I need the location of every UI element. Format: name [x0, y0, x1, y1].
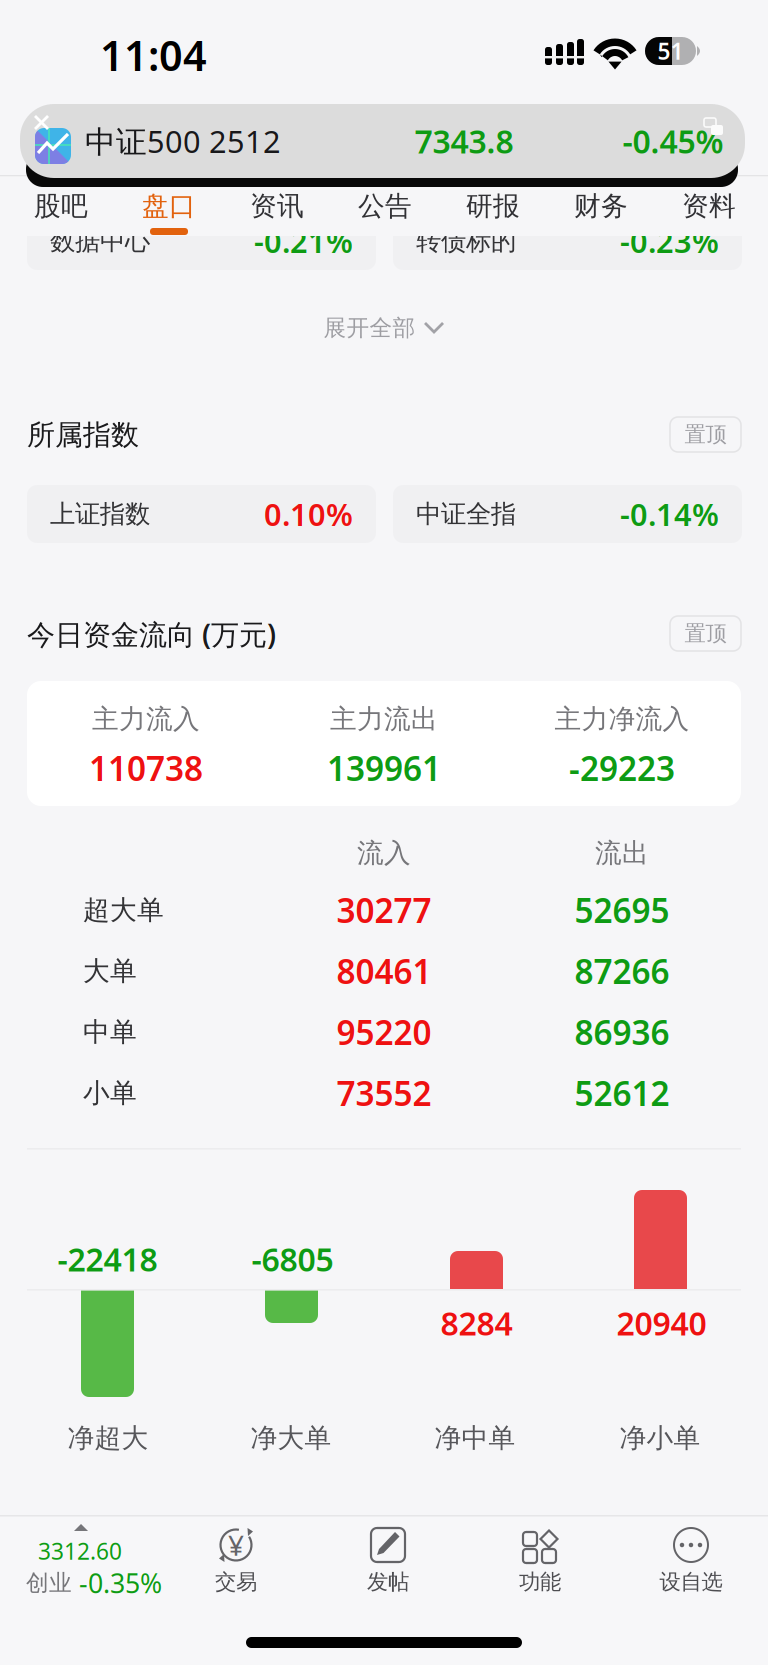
staticText: 交易 — [215, 1569, 257, 1595]
button[interactable]: 研报 — [439, 190, 547, 240]
staticText: 今日资金流向 (万元) — [27, 615, 276, 653]
staticText: -0.45% — [622, 120, 723, 162]
staticText: 86936 — [574, 1010, 669, 1054]
staticText: 主力流出 — [330, 703, 438, 735]
staticText: 设自选 — [659, 1569, 722, 1595]
staticText: 小单 — [83, 1077, 137, 1109]
staticText: 中单 — [83, 1016, 137, 1048]
button[interactable]: 3312.60 — [0, 1527, 180, 1611]
staticText: 73552 — [336, 1071, 431, 1115]
staticText: 净中单 — [434, 1422, 515, 1454]
staticText: 股吧 — [34, 190, 88, 222]
button[interactable]: ¥ — [161, 1526, 311, 1602]
staticText: 功能 — [519, 1569, 561, 1595]
button[interactable]: 资料 — [655, 190, 763, 240]
staticText: 净小单 — [619, 1422, 700, 1454]
staticText: 展开全部 — [323, 314, 415, 342]
staticText: 转债标的 — [416, 225, 516, 256]
staticText: 主力净流入 — [554, 703, 689, 735]
staticText: 主力流入 — [92, 703, 200, 735]
staticText: 置顶 — [684, 421, 726, 448]
button[interactable]: 财务 — [547, 190, 655, 240]
staticText: 52612 — [574, 1071, 669, 1115]
button[interactable]: 中证500 2512 — [20, 104, 745, 178]
staticText: 流入 — [357, 837, 411, 869]
staticText: 30277 — [336, 888, 431, 932]
staticText: 净超大 — [67, 1422, 148, 1454]
button[interactable]: 设自选 — [616, 1526, 766, 1602]
staticText: 7343.8 — [414, 120, 513, 162]
staticText: -6805 — [251, 1238, 333, 1280]
staticText: 创业 — [26, 1569, 72, 1597]
staticText: 所属指数 — [27, 418, 139, 452]
button[interactable]: 展开全部 — [264, 306, 504, 350]
staticText: 87266 — [574, 949, 669, 993]
staticText: ¥ — [228, 1526, 244, 1564]
staticText: 大单 — [83, 955, 137, 987]
staticText: 置顶 — [684, 620, 726, 647]
staticText: -0.23% — [620, 221, 719, 261]
staticText: 资料 — [682, 190, 736, 222]
staticText: 流出 — [595, 837, 649, 869]
button[interactable]: 资讯 — [223, 190, 331, 240]
staticText: 公告 — [358, 190, 412, 222]
staticText: 110738 — [89, 746, 203, 790]
staticText: 139961 — [327, 746, 441, 790]
staticText: 中证全指 — [416, 498, 516, 529]
staticText: -0.35% — [79, 1565, 162, 1601]
button[interactable]: 置顶 — [670, 417, 741, 452]
staticText: 数据中心 — [50, 225, 150, 256]
button[interactable]: 公告 — [331, 190, 439, 240]
button[interactable]: 中证全指 — [393, 485, 742, 543]
staticText: -0.21% — [254, 221, 353, 261]
button[interactable]: 置顶 — [670, 616, 741, 651]
staticText: 发帖 — [367, 1569, 409, 1595]
staticText: 95220 — [336, 1010, 431, 1054]
staticText: 11:04 — [100, 28, 207, 82]
staticText: 3312.60 — [38, 1536, 122, 1566]
staticText: 52695 — [574, 888, 669, 932]
button[interactable]: 功能 — [465, 1526, 615, 1602]
staticText: 财务 — [574, 190, 628, 222]
staticText: -22418 — [57, 1238, 157, 1280]
staticText: 净大单 — [250, 1422, 331, 1454]
staticText: 20940 — [616, 1302, 706, 1344]
staticText: 中证500 2512 — [85, 121, 281, 161]
staticText: 资讯 — [250, 190, 304, 222]
button[interactable]: 发帖 — [313, 1526, 463, 1602]
staticText: 盘口 — [142, 190, 196, 222]
button[interactable]: 盘口 — [115, 190, 223, 240]
staticText: 80461 — [336, 949, 431, 993]
staticText: -29223 — [569, 746, 675, 790]
staticText: 研报 — [466, 190, 520, 222]
button[interactable]: 股吧 — [7, 190, 115, 240]
staticText: 0.10% — [264, 494, 353, 534]
staticText: 8284 — [440, 1302, 512, 1344]
staticText: 超大单 — [83, 894, 164, 926]
button[interactable]: 上证指数 — [27, 485, 376, 543]
staticText: 上证指数 — [50, 498, 150, 529]
staticText: 51 — [657, 36, 683, 66]
staticText: -0.14% — [620, 494, 719, 534]
